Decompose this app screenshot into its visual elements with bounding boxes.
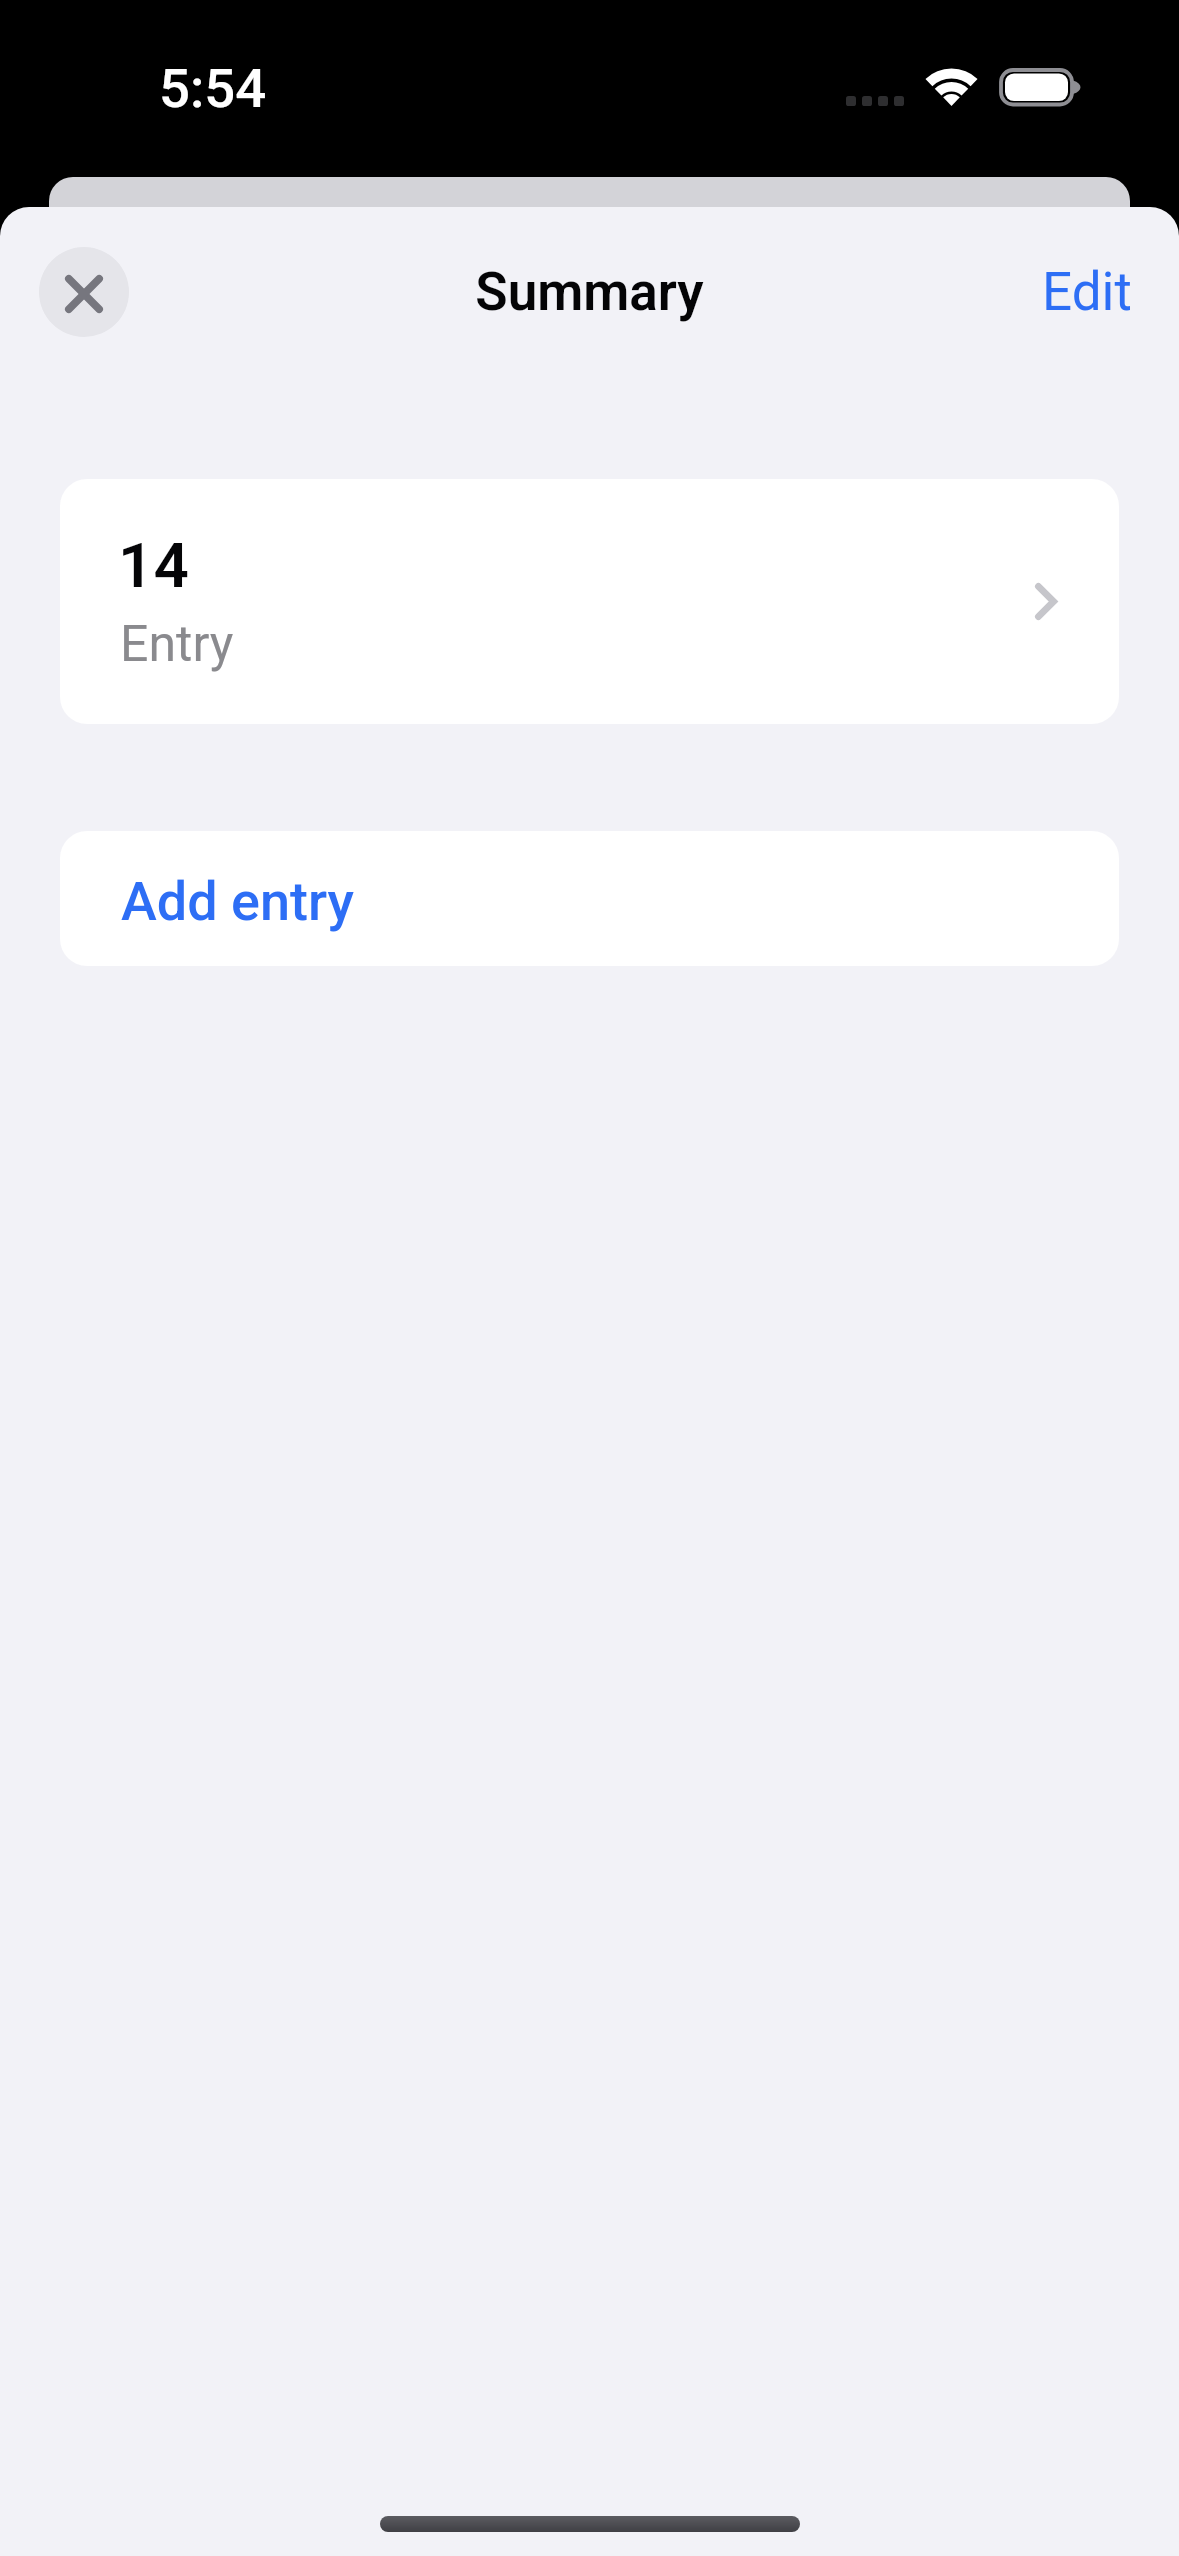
staticText: Entry [120, 615, 234, 674]
staticText: 5:54 [159, 56, 267, 120]
staticText: 14 [118, 529, 189, 602]
staticText: Add entry [121, 870, 355, 933]
button[interactable]: Add entry [60, 831, 1119, 966]
button[interactable]: 14 [60, 479, 1119, 724]
staticText: Edit [1042, 261, 1132, 323]
staticText: Summary [0, 261, 1179, 323]
button[interactable]: Edit [1022, 242, 1152, 342]
button[interactable]: Close [39, 247, 129, 337]
